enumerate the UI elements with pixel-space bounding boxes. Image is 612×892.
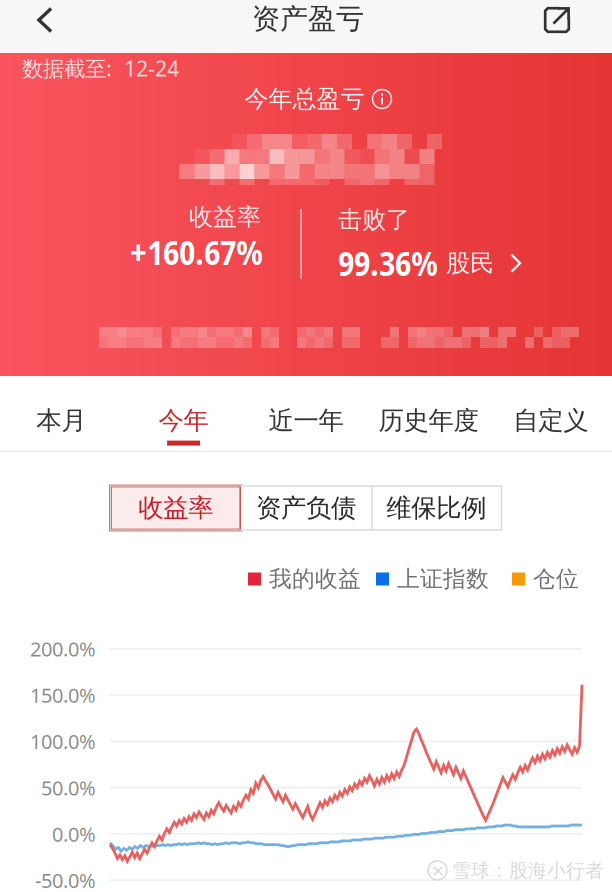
button[interactable]: 本月 xyxy=(0,376,122,451)
button[interactable]: 收益率 xyxy=(110,486,241,530)
staticText: 0.0% xyxy=(52,821,96,847)
staticText: 自定义 xyxy=(513,405,588,436)
staticText: +160.67% xyxy=(130,229,263,275)
button[interactable]: 维保比例 xyxy=(371,486,501,530)
staticText: 100.0% xyxy=(30,728,96,755)
staticText: 200.0% xyxy=(30,635,96,662)
staticText: 维保比例 xyxy=(386,492,486,523)
button[interactable]: 自定义 xyxy=(490,376,612,451)
staticText: 股民 xyxy=(446,248,494,278)
staticText: 今年 xyxy=(159,405,209,436)
button[interactable]: 分享 xyxy=(529,0,585,40)
button[interactable]: 今年 xyxy=(122,376,245,451)
staticText: 我的收益 xyxy=(269,565,361,593)
button[interactable]: 返回 xyxy=(17,0,73,40)
staticText: 数据截至: 12-24 xyxy=(22,54,179,82)
staticText: 击败了 xyxy=(338,205,410,234)
staticText: -50.0% xyxy=(35,867,96,892)
staticText: 本月 xyxy=(36,405,86,436)
staticText: 收益率 xyxy=(189,202,261,232)
button[interactable]: 历史年度 xyxy=(367,376,490,451)
staticText: 99.36% xyxy=(338,240,438,286)
staticText: 今年总盈亏 xyxy=(244,84,364,114)
staticText: 仓位 xyxy=(533,565,579,593)
staticText: 资产盈亏 xyxy=(252,2,364,36)
staticText: 150.0% xyxy=(30,682,96,708)
staticText: 近一年 xyxy=(268,405,343,436)
button[interactable]: 资产负债 xyxy=(241,486,371,530)
button[interactable]: 近一年 xyxy=(245,376,367,451)
staticText: 雪球：股海小行者 xyxy=(452,859,604,882)
button[interactable]: 击败了 xyxy=(338,205,568,283)
staticText: 历史年度 xyxy=(378,405,478,436)
staticText: 上证指数 xyxy=(397,565,489,593)
staticText: 资产负债 xyxy=(256,492,356,523)
staticText: 50.0% xyxy=(41,774,96,801)
staticText: 收益率 xyxy=(138,492,213,523)
